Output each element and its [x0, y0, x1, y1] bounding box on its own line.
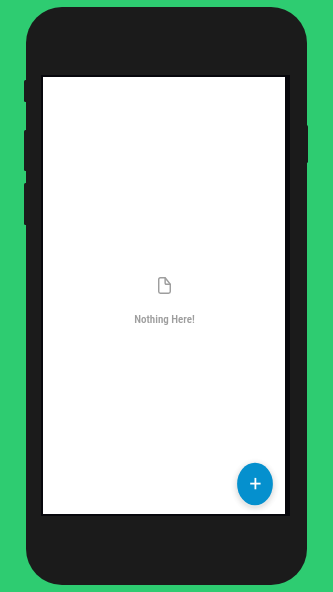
button[interactable]: Add [230, 456, 280, 512]
staticText: Nothing Here! [134, 313, 195, 326]
